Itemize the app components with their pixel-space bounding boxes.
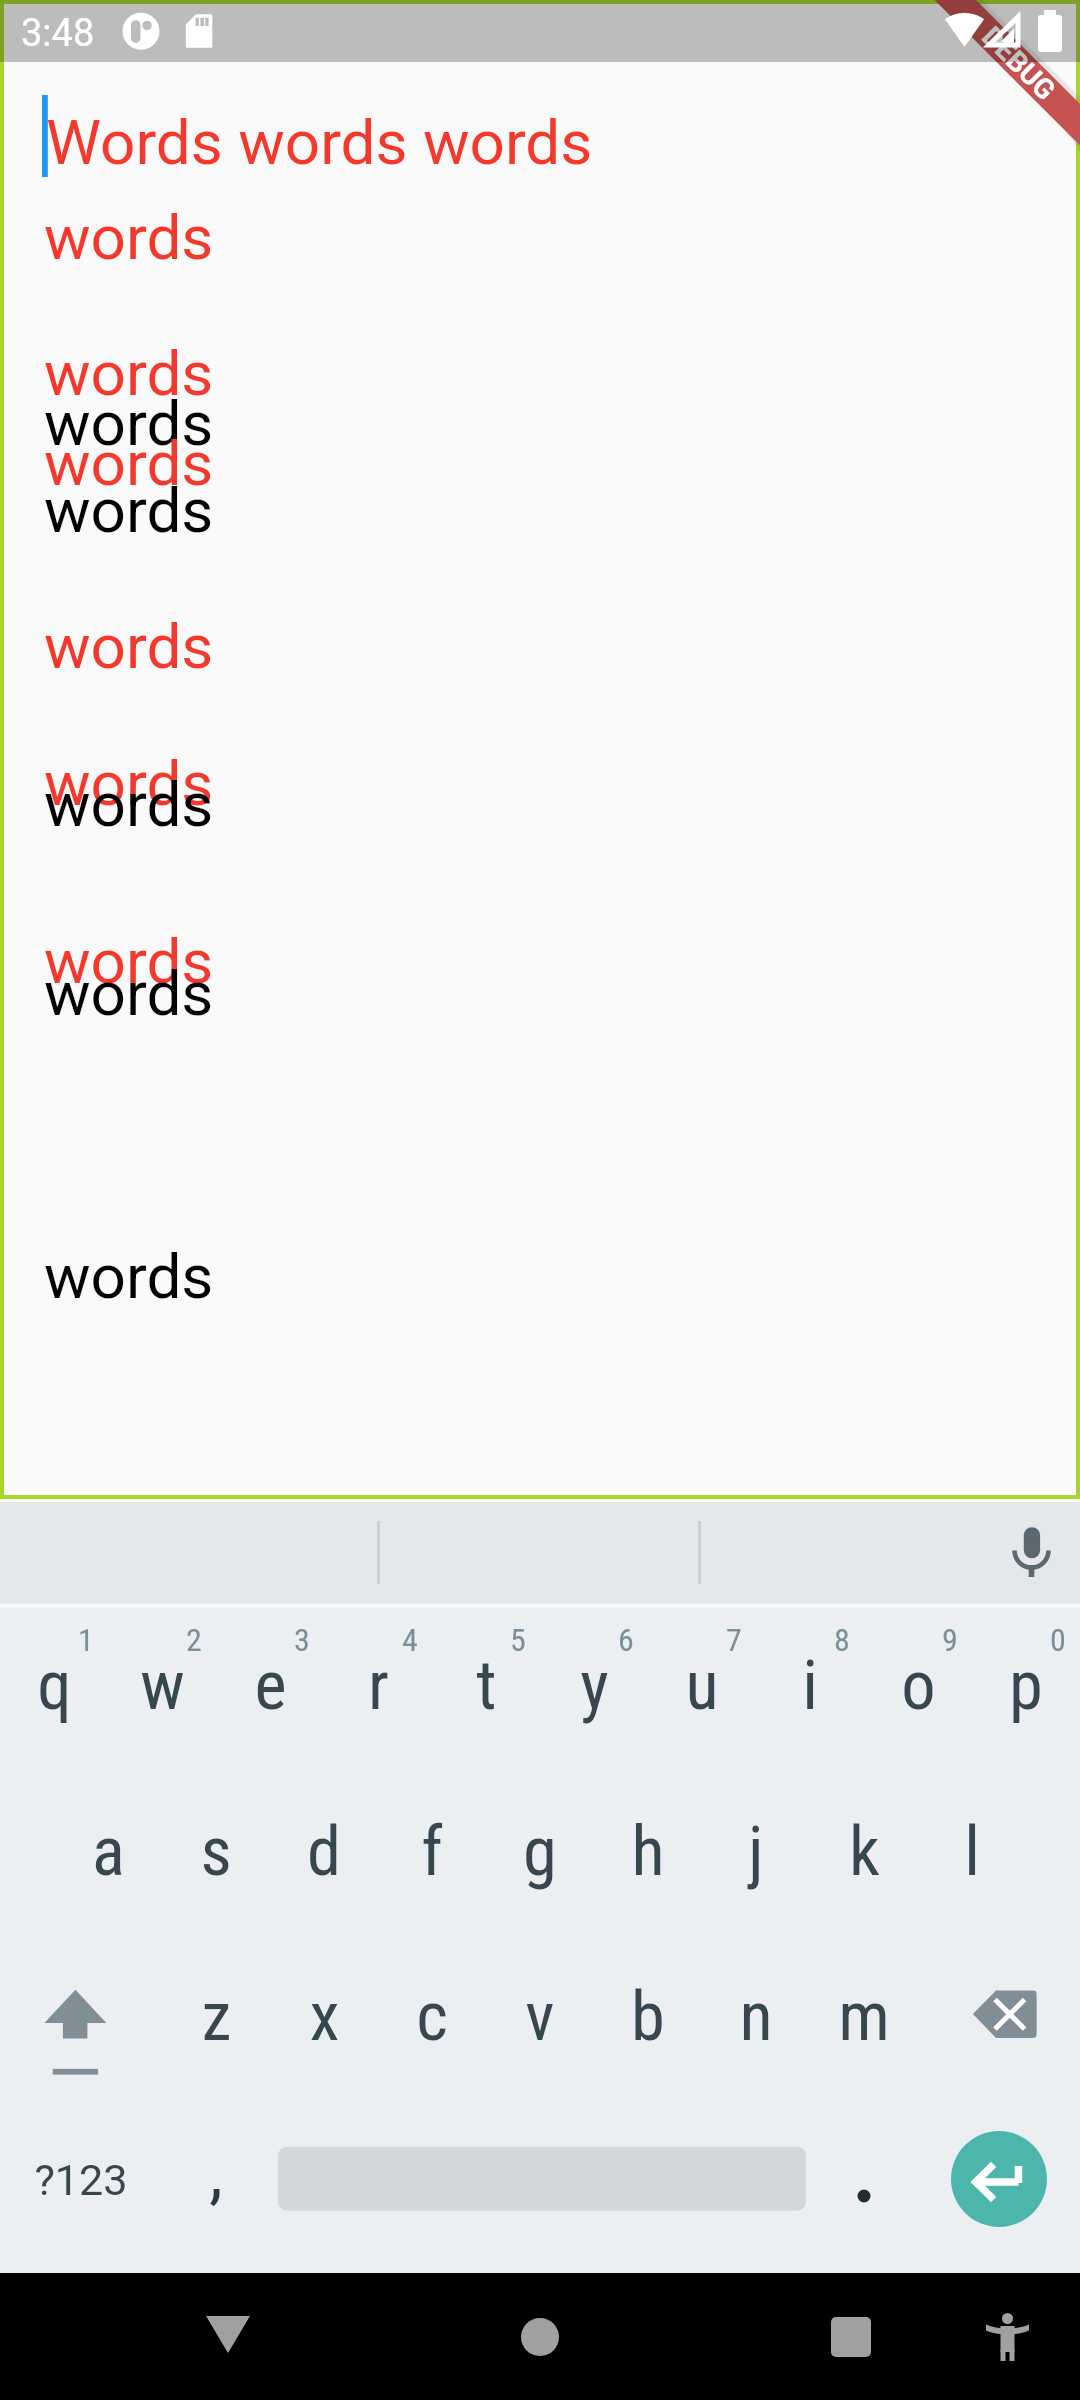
staticText: l xyxy=(964,1811,980,1891)
staticText: ?123 xyxy=(34,2155,128,2206)
staticText: 7 xyxy=(709,1621,759,1659)
button[interactable]: Space xyxy=(278,2120,806,2240)
staticText: 3:48 xyxy=(21,11,95,56)
staticText: words xyxy=(44,747,214,820)
staticText: z xyxy=(201,1976,232,2056)
staticText: words xyxy=(44,957,214,1030)
button[interactable]: m xyxy=(810,1926,918,2086)
button[interactable]: Period xyxy=(820,2120,910,2240)
staticText: n xyxy=(739,1976,773,2056)
button[interactable]: r xyxy=(324,1595,432,1755)
button[interactable]: , xyxy=(162,2082,270,2242)
staticText: s xyxy=(200,1811,232,1891)
staticText: k xyxy=(849,1811,880,1891)
button[interactable]: d xyxy=(270,1761,378,1921)
button[interactable]: c xyxy=(378,1926,486,2086)
button[interactable]: e xyxy=(216,1595,324,1755)
staticText: a xyxy=(92,1811,125,1891)
button[interactable]: Hide keyboard xyxy=(0,2273,360,2400)
button[interactable]: a xyxy=(54,1761,162,1921)
button[interactable]: p xyxy=(972,1595,1080,1755)
button[interactable]: w xyxy=(108,1595,216,1755)
staticText: w xyxy=(140,1645,185,1725)
staticText: 1 xyxy=(61,1621,111,1659)
staticText: b xyxy=(631,1976,665,2056)
button[interactable]: y xyxy=(540,1595,648,1755)
button[interactable]: t xyxy=(432,1595,540,1755)
staticText: 4 xyxy=(385,1621,435,1659)
button[interactable]: i xyxy=(756,1595,864,1755)
staticText: g xyxy=(523,1811,557,1891)
staticText: h xyxy=(631,1811,665,1891)
staticText: words xyxy=(44,337,214,410)
button[interactable]: Shift xyxy=(4,1950,152,2100)
button[interactable]: Accessibility xyxy=(960,2273,1080,2400)
staticText: f xyxy=(421,1811,443,1891)
button[interactable]: q xyxy=(0,1595,108,1755)
button[interactable]: u xyxy=(648,1595,756,1755)
button[interactable]: j xyxy=(702,1761,810,1921)
button[interactable]: b xyxy=(594,1926,702,2086)
button[interactable]: f xyxy=(378,1761,486,1921)
button[interactable]: o xyxy=(864,1595,972,1755)
staticText: m xyxy=(838,1976,890,2056)
staticText: words xyxy=(44,768,214,841)
button[interactable]: Home xyxy=(360,2273,720,2400)
staticText: j xyxy=(748,1811,764,1891)
staticText: c xyxy=(416,1976,448,2056)
button[interactable]: Recent apps xyxy=(720,2273,960,2400)
button[interactable]: n xyxy=(702,1926,810,2086)
button[interactable]: Enter xyxy=(945,2125,1053,2233)
staticText: r xyxy=(368,1645,389,1725)
button[interactable]: ?123 xyxy=(11,2105,151,2255)
staticText: q xyxy=(37,1645,72,1725)
staticText: words xyxy=(44,925,214,998)
staticText: 3 xyxy=(277,1621,327,1659)
button[interactable]: s xyxy=(162,1761,270,1921)
staticText: words xyxy=(44,427,214,500)
staticText: x xyxy=(309,1976,340,2056)
button[interactable]: Voice input xyxy=(982,1502,1080,1604)
button[interactable]: z xyxy=(162,1926,270,2086)
staticText: y xyxy=(580,1645,609,1725)
staticText: words xyxy=(44,387,214,460)
staticText: words xyxy=(44,201,214,274)
staticText: i xyxy=(802,1645,818,1725)
staticText: words xyxy=(44,1240,214,1313)
button[interactable]: h xyxy=(594,1761,702,1921)
staticText: 0 xyxy=(1033,1621,1080,1659)
staticText: 8 xyxy=(817,1621,867,1659)
button[interactable]: Text editor xyxy=(0,0,1080,1502)
button[interactable]: v xyxy=(486,1926,594,2086)
button[interactable]: Backspace xyxy=(930,1950,1078,2100)
staticText: 6 xyxy=(601,1621,651,1659)
staticText: e xyxy=(254,1645,287,1725)
staticText: u xyxy=(685,1645,719,1725)
staticText: p xyxy=(1009,1645,1043,1725)
staticText: o xyxy=(901,1645,936,1725)
button[interactable]: g xyxy=(486,1761,594,1921)
staticText: , xyxy=(209,2132,223,2212)
button[interactable]: x xyxy=(270,1926,378,2086)
staticText: words xyxy=(44,610,214,683)
button[interactable]: k xyxy=(810,1761,918,1921)
staticText: v xyxy=(525,1976,555,2056)
button[interactable]: l xyxy=(918,1761,1026,1921)
staticText: Words words words xyxy=(46,106,593,179)
staticText: 5 xyxy=(493,1621,543,1659)
staticText: 2 xyxy=(169,1621,219,1659)
staticText: t xyxy=(476,1645,497,1725)
staticText: d xyxy=(307,1811,341,1891)
staticText: DEBUG xyxy=(975,20,1062,107)
staticText: words xyxy=(44,474,214,547)
staticText: 9 xyxy=(925,1621,975,1659)
